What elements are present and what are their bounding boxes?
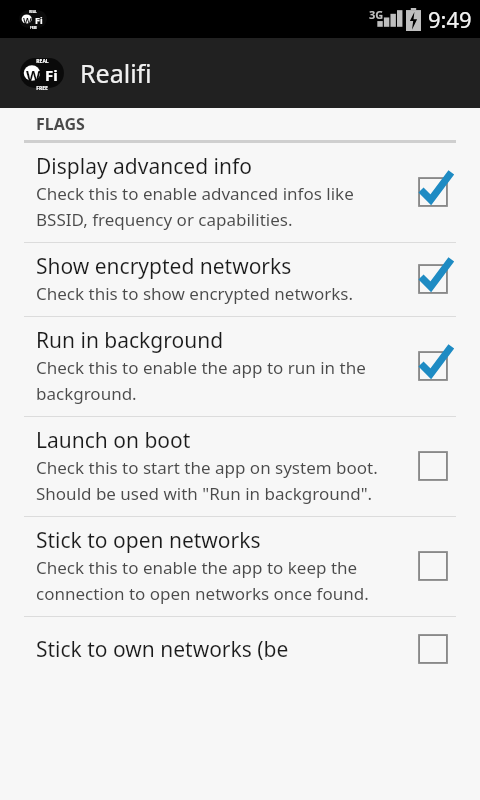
button[interactable]: Unchecked	[410, 443, 456, 489]
staticText: Realifi	[80, 56, 152, 90]
staticText: Show encrypted networks	[36, 252, 292, 281]
button[interactable]: Show encrypted networks	[0, 243, 480, 316]
staticText: Wi	[23, 14, 35, 26]
button[interactable]: Stick to own networks (be	[0, 617, 480, 683]
button[interactable]: Stick to open networks	[0, 517, 480, 616]
button[interactable]: Launch on boot	[0, 417, 480, 516]
staticText: Wi	[26, 65, 45, 85]
staticText: REAL	[36, 58, 49, 65]
staticText: Display advanced info	[36, 152, 252, 181]
staticText: 3G	[369, 7, 384, 22]
staticText: Check this to enable the app to run in t…	[36, 356, 398, 405]
staticText: 9:49	[428, 4, 472, 34]
staticText: Fi	[35, 14, 43, 26]
staticText: Stick to own networks (be	[36, 635, 289, 664]
button[interactable]: Checked	[410, 256, 456, 302]
button[interactable]: Checked	[410, 169, 456, 215]
staticText: Launch on boot	[36, 426, 191, 455]
staticText: Check this to start the app on system bo…	[36, 456, 398, 505]
button[interactable]: Run in background	[0, 317, 480, 416]
staticText: FREE	[36, 85, 48, 90]
button[interactable]: Unchecked	[410, 626, 456, 672]
staticText: Check this to show encrypted networks.	[36, 282, 353, 305]
button[interactable]: Display advanced info	[0, 143, 480, 242]
button[interactable]: Unchecked	[410, 543, 456, 589]
staticText: Stick to open networks	[36, 526, 261, 555]
button[interactable]: Checked	[410, 343, 456, 389]
staticText: REAL	[29, 10, 37, 14]
staticText: FREE	[30, 26, 37, 29]
staticText: FLAGS	[36, 113, 85, 135]
staticText: Run in background	[36, 326, 224, 355]
staticText: Fi	[45, 65, 58, 85]
staticText: Check this to enable advanced infos like…	[36, 182, 398, 231]
staticText: Check this to enable the app to keep the…	[36, 556, 398, 605]
